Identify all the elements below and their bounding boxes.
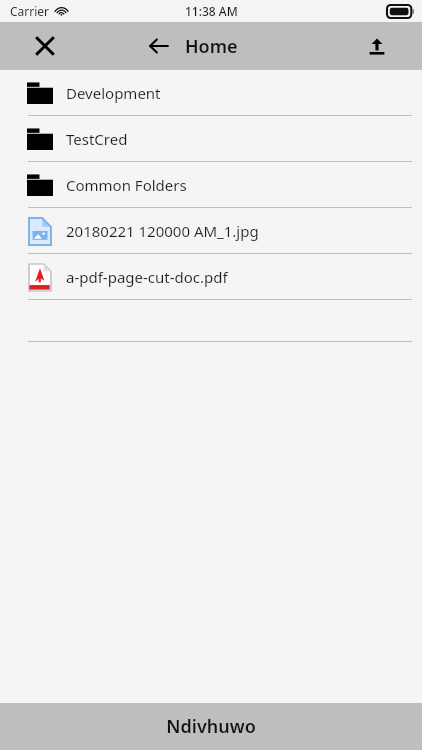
staticText: TestCred xyxy=(66,129,128,149)
button[interactable]: Common Folders xyxy=(0,162,422,207)
button[interactable]: a-pdf-page-cut-doc.pdf xyxy=(0,254,422,299)
staticText: Ndivhuwo xyxy=(166,714,256,739)
button[interactable]: Back xyxy=(140,27,178,65)
staticText: Common Folders xyxy=(66,175,187,195)
staticText: 11:38 AM xyxy=(185,3,238,19)
button[interactable]: TestCred xyxy=(0,116,422,161)
staticText: Carrier xyxy=(10,3,50,19)
staticText: a-pdf-page-cut-doc.pdf xyxy=(66,267,228,287)
staticText: Home xyxy=(185,34,238,59)
button[interactable]: Upload xyxy=(360,29,394,63)
staticText: Development xyxy=(66,83,161,103)
button[interactable]: Development xyxy=(0,70,422,115)
button[interactable]: Close xyxy=(28,29,62,63)
button[interactable]: Ndivhuwo xyxy=(0,703,422,750)
button[interactable]: 20180221 120000 AM_1.jpg xyxy=(0,208,422,253)
staticText: 20180221 120000 AM_1.jpg xyxy=(66,221,259,241)
